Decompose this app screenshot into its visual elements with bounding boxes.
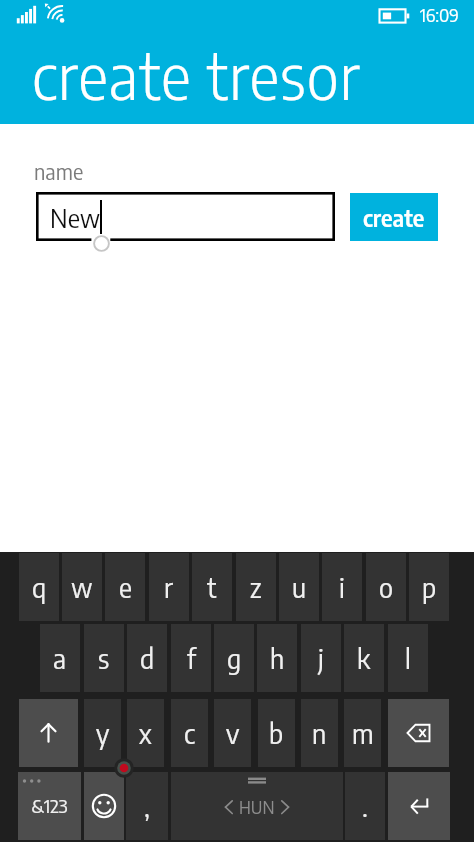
staticText: q (32, 570, 47, 604)
button[interactable]: a (40, 624, 80, 692)
staticText: z (250, 570, 262, 604)
button[interactable]: m (344, 699, 381, 767)
button[interactable]: r (149, 553, 189, 621)
button[interactable]: d (127, 624, 167, 692)
button[interactable]: l (388, 624, 428, 692)
button[interactable]: u (279, 553, 319, 621)
button[interactable]: p (409, 553, 449, 621)
staticText: n (312, 716, 327, 750)
button[interactable]: e (105, 553, 145, 621)
button[interactable]: i (322, 553, 362, 621)
button[interactable]: z (236, 553, 276, 621)
staticText: i (339, 570, 345, 604)
staticText: h (270, 641, 285, 675)
staticText: g (227, 641, 242, 675)
staticText: y (96, 716, 110, 750)
staticText: &123 (31, 794, 68, 817)
button[interactable]: Enter (388, 772, 450, 840)
button[interactable]: g (214, 624, 254, 692)
staticText: t (207, 570, 217, 604)
button[interactable]: Shift (19, 699, 78, 767)
button[interactable]: b (258, 699, 295, 767)
button[interactable]: j (301, 624, 341, 692)
staticText: x (139, 716, 152, 750)
staticText: create (363, 203, 425, 232)
staticText: s (98, 641, 110, 675)
staticText: w (71, 570, 93, 604)
staticText: c (184, 716, 195, 750)
button[interactable]: v (214, 699, 251, 767)
button[interactable]: y (84, 699, 121, 767)
button[interactable]: Symbols (18, 772, 81, 840)
button[interactable]: c (171, 699, 208, 767)
staticText: b (269, 716, 284, 750)
button[interactable]: , (126, 772, 168, 840)
staticText: j (318, 641, 324, 675)
staticText: m (352, 716, 374, 750)
staticText: r (164, 570, 174, 604)
staticText: a (53, 641, 67, 675)
staticText: l (405, 641, 411, 675)
staticText: d (140, 641, 155, 675)
button[interactable]: s (84, 624, 124, 692)
button[interactable]: create (350, 193, 438, 241)
button[interactable]: h (257, 624, 297, 692)
button[interactable]: x (127, 699, 164, 767)
staticText: . (362, 789, 368, 823)
button[interactable]: w (62, 553, 102, 621)
staticText: create tresor (32, 35, 361, 114)
staticText: o (379, 570, 393, 604)
button[interactable]: q (19, 553, 59, 621)
staticText: name (34, 158, 84, 185)
staticText: f (187, 641, 196, 675)
button[interactable]: t (192, 553, 232, 621)
button[interactable]: New (36, 192, 335, 241)
staticText: 16:09 (420, 4, 459, 26)
staticText: k (357, 641, 371, 675)
button[interactable]: Backspace (388, 699, 449, 767)
button[interactable]: n (301, 699, 338, 767)
staticText: u (292, 570, 307, 604)
staticText: v (226, 716, 240, 750)
staticText: p (422, 570, 437, 604)
staticText: , (144, 789, 150, 823)
staticText: New (50, 202, 101, 234)
button[interactable]: Space (171, 772, 343, 840)
button[interactable]: Emoji (84, 772, 124, 840)
button[interactable]: f (171, 624, 211, 692)
button[interactable]: o (366, 553, 406, 621)
staticText: e (119, 570, 132, 604)
button[interactable]: . (345, 772, 385, 840)
staticText: HUN (239, 796, 275, 818)
button[interactable]: k (344, 624, 384, 692)
